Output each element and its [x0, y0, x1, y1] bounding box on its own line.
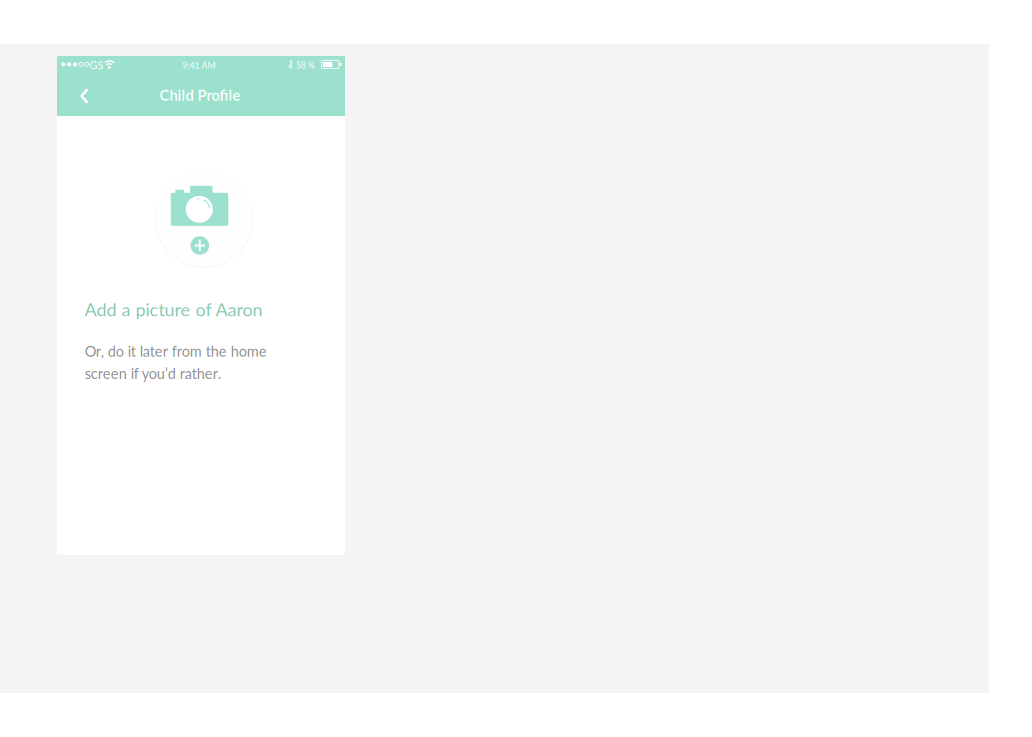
button[interactable]: Add a picture of Aaron — [84, 298, 262, 320]
button[interactable]: Back — [57, 73, 112, 116]
staticText: Add a picture of Aaron — [84, 298, 262, 320]
button[interactable]: Add a picture — [155, 170, 253, 268]
staticText: Child Profile — [159, 86, 240, 104]
staticText: 9:41 AM — [183, 60, 216, 71]
staticText: Or, do it later from the home screen if … — [85, 342, 267, 382]
staticText: 58 % — [296, 60, 315, 70]
staticText: GS — [90, 59, 104, 72]
